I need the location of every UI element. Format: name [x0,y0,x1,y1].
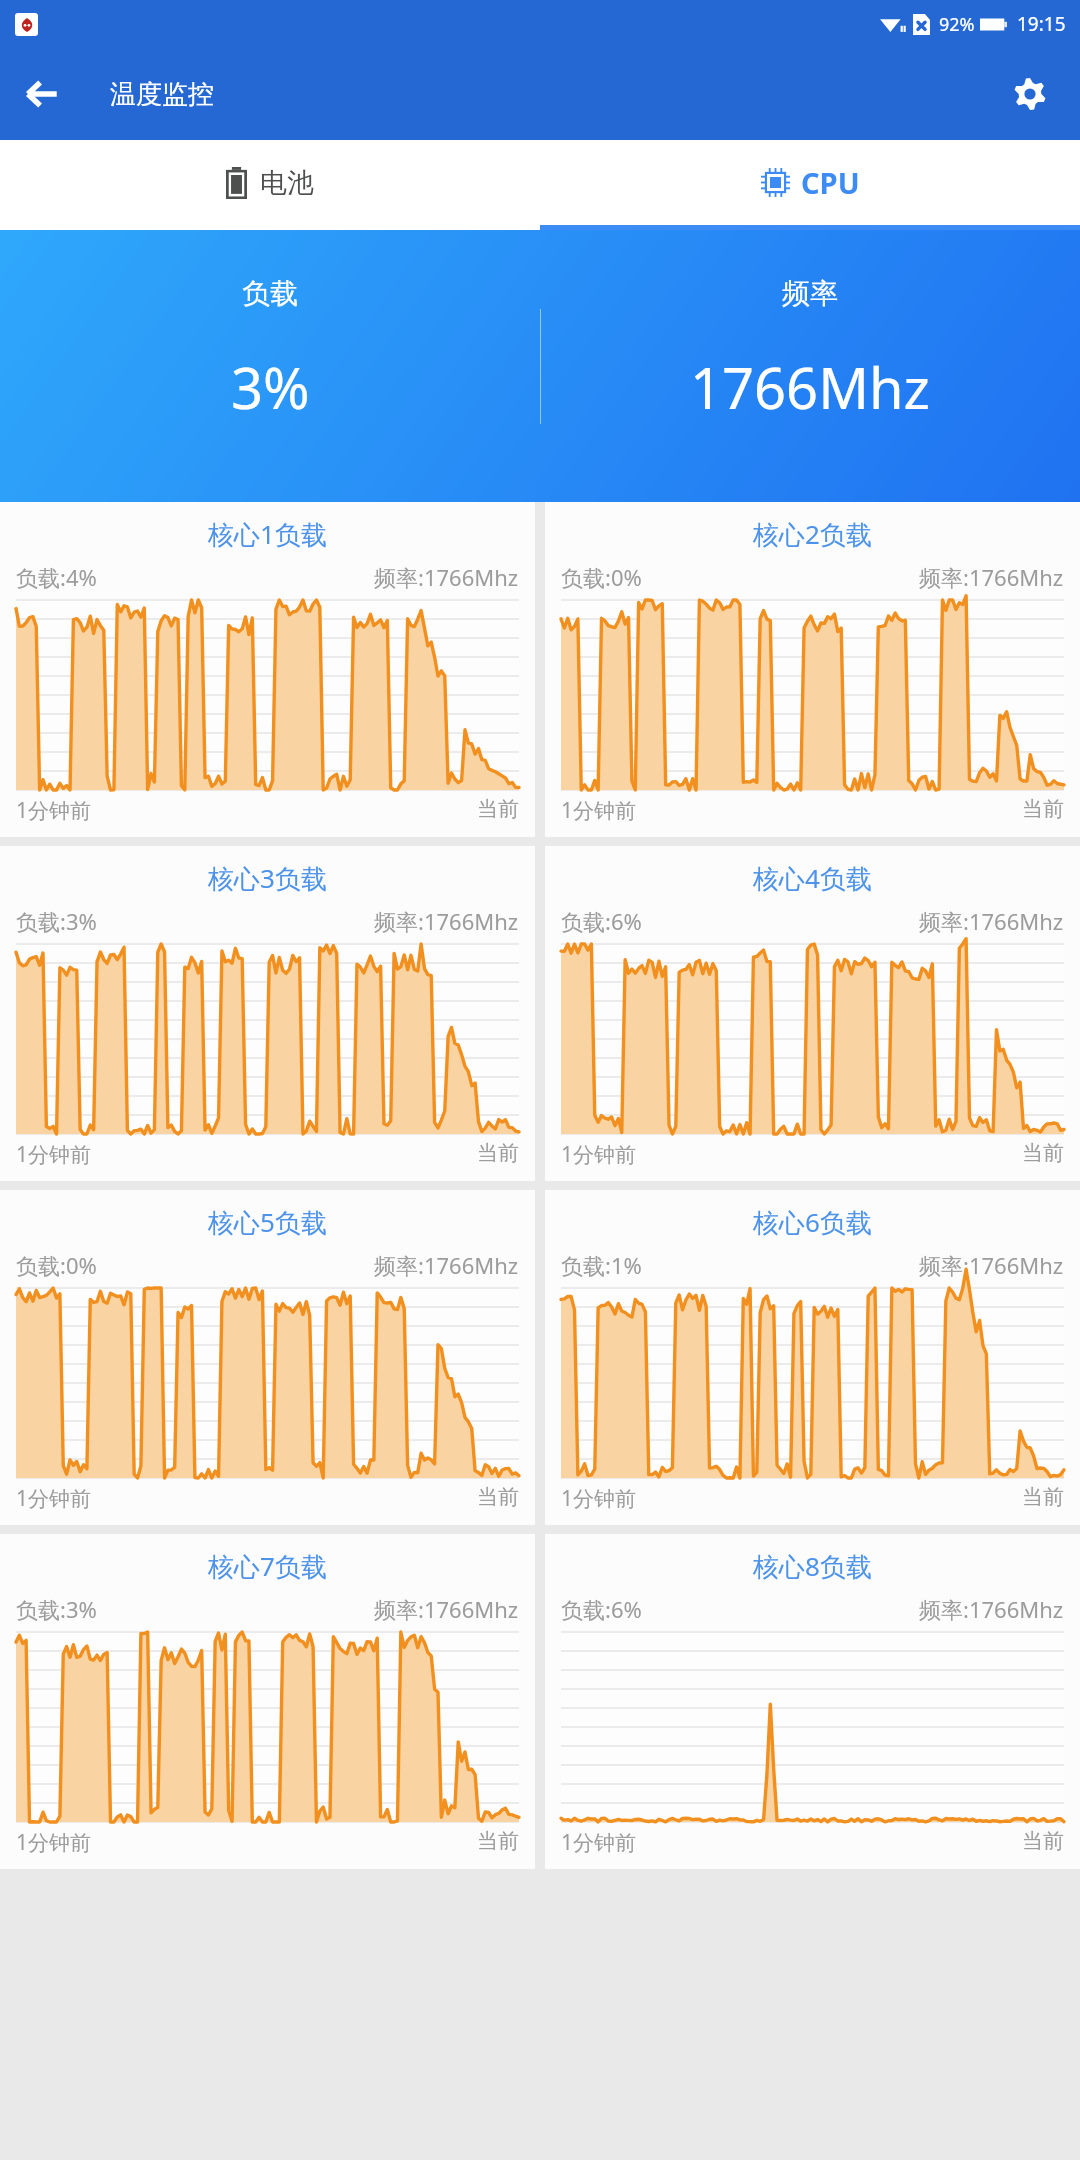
staticText: 负载:4% [16,562,97,592]
button[interactable]: 电池 [0,140,540,225]
staticText: 负载 [242,276,298,311]
staticText: CPU [801,163,860,202]
staticText: 负载:6% [561,906,642,936]
staticText: 频率:1766Mhz [919,562,1064,592]
staticText: 1766Mhz [690,349,930,425]
staticText: 核心7负载 [0,1548,535,1584]
button[interactable]: 核心1负载 [0,502,535,837]
staticText: 频率 [782,276,838,311]
staticText: 92% [939,12,975,37]
staticText: 核心6负载 [545,1204,1080,1240]
button[interactable]: 核心3负载 [0,846,535,1181]
staticText: 1分钟前 [561,1140,637,1169]
button[interactable]: 核心8负载 [545,1534,1080,1869]
staticText: 1分钟前 [16,1484,92,1513]
button[interactable]: 核心5负载 [0,1190,535,1525]
staticText: 频率:1766Mhz [374,1250,519,1280]
staticText: 核心8负载 [545,1548,1080,1584]
button[interactable]: 核心4负载 [545,846,1080,1181]
button[interactable]: 核心7负载 [0,1534,535,1869]
staticText: 当前 [477,1828,519,1854]
staticText: 当前 [1022,796,1064,822]
staticText: 温度监控 [110,78,214,111]
staticText: 3% [231,349,310,425]
staticText: 频率:1766Mhz [919,1250,1064,1280]
button[interactable]: Back [12,64,72,124]
staticText: 负载:0% [16,1250,97,1280]
staticText: 1分钟前 [561,1828,637,1857]
staticText: 频率:1766Mhz [374,906,519,936]
staticText: 当前 [477,796,519,822]
button[interactable]: 核心6负载 [545,1190,1080,1525]
staticText: 1分钟前 [561,796,637,825]
staticText: 核心2负载 [545,516,1080,552]
staticText: 当前 [477,1140,519,1166]
staticText: 1分钟前 [16,1828,92,1857]
staticText: 19:15 [1017,11,1066,37]
staticText: 当前 [477,1484,519,1510]
staticText: 频率:1766Mhz [919,1594,1064,1624]
staticText: 当前 [1022,1828,1064,1854]
staticText: 负载:3% [16,1594,97,1624]
staticText: 1分钟前 [16,796,92,825]
staticText: 频率:1766Mhz [374,562,519,592]
staticText: 频率:1766Mhz [374,1594,519,1624]
staticText: 负载:3% [16,906,97,936]
staticText: 负载:1% [561,1250,642,1280]
staticText: 频率:1766Mhz [919,906,1064,936]
button[interactable]: 核心2负载 [545,502,1080,837]
staticText: 核心4负载 [545,860,1080,896]
staticText: 核心1负载 [0,516,535,552]
staticText: 电池 [260,166,314,200]
staticText: 负载:0% [561,562,642,592]
staticText: 核心5负载 [0,1204,535,1240]
button[interactable]: CPU [540,140,1080,225]
staticText: 当前 [1022,1484,1064,1510]
staticText: 1分钟前 [561,1484,637,1513]
button[interactable]: Settings [1002,66,1058,122]
staticText: 1分钟前 [16,1140,92,1169]
staticText: 当前 [1022,1140,1064,1166]
staticText: 负载:6% [561,1594,642,1624]
staticText: 核心3负载 [0,860,535,896]
